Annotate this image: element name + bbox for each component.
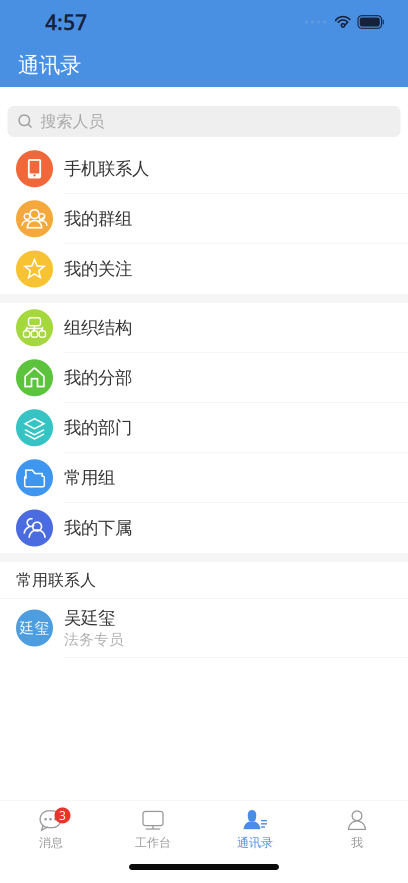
button[interactable]: 我的群组 [0, 194, 408, 244]
button[interactable]: 我的下属 [0, 503, 408, 553]
button[interactable]: 搜索人员 [0, 87, 408, 144]
staticText: 我的下属 [64, 517, 132, 539]
staticText: 常用联系人 [16, 570, 96, 590]
staticText: 我的部门 [64, 417, 132, 438]
staticText: 4:57 [45, 8, 87, 36]
staticText: 3 [59, 807, 66, 823]
button[interactable]: 我 [306, 801, 408, 850]
staticText: 组织结构 [64, 317, 132, 338]
staticText: 通讯录 [237, 835, 273, 850]
staticText: 我的群组 [64, 208, 132, 229]
staticText: 我的分部 [64, 367, 132, 388]
button[interactable]: 通讯录 [204, 801, 306, 850]
staticText: 搜索人员 [40, 112, 104, 131]
button[interactable]: 我的部门 [0, 403, 408, 453]
staticText: 消息 [39, 835, 63, 850]
staticText: 手机联系人 [64, 158, 149, 179]
staticText: 法务专员 [64, 631, 124, 649]
button[interactable]: 我的关注 [0, 244, 408, 294]
button[interactable]: 工作台 [102, 801, 204, 850]
staticText: 常用组 [64, 467, 115, 488]
button[interactable]: 廷玺 [0, 599, 408, 657]
staticText: 工作台 [135, 835, 171, 850]
staticText: 吴廷玺 [64, 607, 115, 629]
button[interactable]: 手机联系人 [0, 144, 408, 194]
staticText: 廷玺 [19, 619, 49, 637]
button[interactable]: 常用组 [0, 453, 408, 503]
button[interactable]: 3 [0, 801, 102, 850]
button[interactable]: 组织结构 [0, 303, 408, 353]
staticText: 通讯录 [18, 52, 81, 79]
button[interactable]: 我的分部 [0, 353, 408, 403]
staticText: 我的关注 [64, 258, 132, 280]
staticText: 我 [351, 835, 363, 850]
